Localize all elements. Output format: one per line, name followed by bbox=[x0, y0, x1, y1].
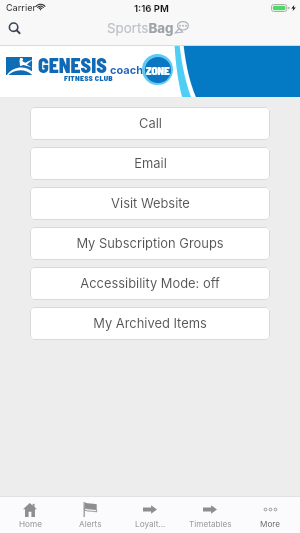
staticText: ZONE bbox=[146, 64, 170, 77]
button[interactable]: My Archived Items bbox=[30, 307, 270, 340]
button[interactable]: Call bbox=[30, 107, 270, 140]
button[interactable]: Home bbox=[0, 496, 60, 533]
staticText: Visit Website bbox=[111, 196, 190, 212]
staticText: Timetables bbox=[189, 519, 232, 529]
staticText: FITNESS CLUB bbox=[64, 73, 113, 83]
button[interactable]: Accessibility Mode: off bbox=[30, 267, 270, 300]
staticText: Loyalt... bbox=[135, 519, 166, 529]
staticText: Carrier bbox=[6, 2, 36, 13]
button[interactable]: Visit Website bbox=[30, 187, 270, 220]
staticText: coaching bbox=[110, 63, 160, 76]
button[interactable]: My Subscription Groups bbox=[30, 227, 270, 260]
button[interactable]: Loyalt... bbox=[120, 496, 180, 533]
staticText: My Archived Items bbox=[93, 316, 207, 332]
button[interactable]: Search bbox=[0, 16, 29, 40]
button[interactable]: Alerts bbox=[60, 496, 120, 533]
staticText: Call bbox=[139, 116, 162, 132]
staticText: SportsBag bbox=[107, 20, 174, 36]
staticText: 1:16 PM bbox=[134, 3, 169, 14]
staticText: Home bbox=[19, 519, 42, 529]
staticText: Email bbox=[134, 156, 167, 172]
button[interactable]: More bbox=[240, 496, 300, 533]
button[interactable]: Email bbox=[30, 147, 270, 180]
staticText: Alerts bbox=[79, 519, 102, 529]
staticText: Accessibility Mode: off bbox=[80, 276, 220, 292]
staticText: My Subscription Groups bbox=[76, 236, 224, 252]
staticText: More bbox=[260, 519, 281, 529]
button[interactable]: Timetables bbox=[180, 496, 240, 533]
staticText: GENESIS bbox=[38, 53, 107, 77]
